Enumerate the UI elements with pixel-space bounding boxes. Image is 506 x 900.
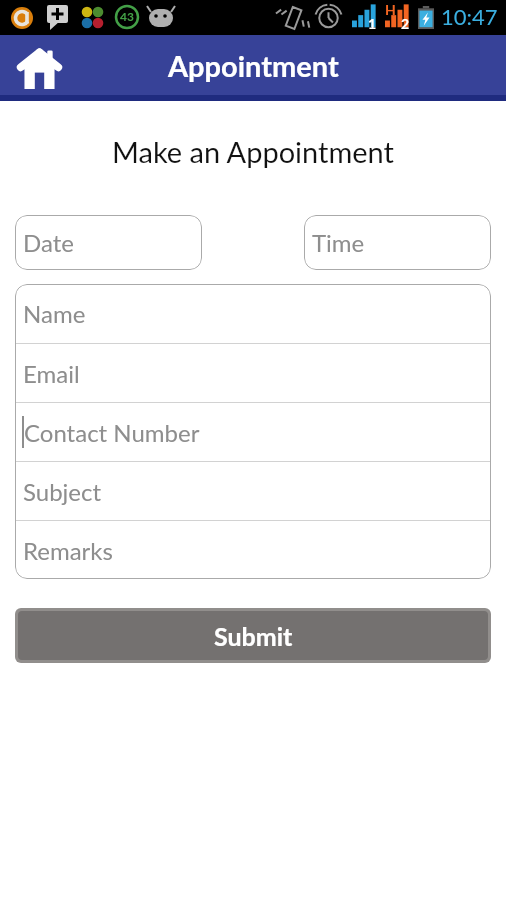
button[interactable]: Submit <box>18 611 488 660</box>
staticText: 10:47 <box>441 3 498 29</box>
button[interactable]: Remarks <box>15 521 491 579</box>
staticText: 2 <box>401 15 410 32</box>
staticText: H <box>385 1 396 18</box>
staticText: Contact Number <box>24 418 200 447</box>
staticText: Remarks <box>23 536 113 565</box>
staticText: Time <box>312 228 365 257</box>
staticText: Make an Appointment <box>0 134 506 169</box>
button[interactable]: Contact Number <box>15 403 491 461</box>
button[interactable]: Email <box>15 344 491 402</box>
button[interactable]: Name <box>15 284 491 343</box>
button[interactable]: Date <box>15 215 202 270</box>
button[interactable]: Time <box>304 215 491 270</box>
staticText: Submit <box>214 621 293 651</box>
staticText: 1 <box>368 15 377 32</box>
staticText: Date <box>23 228 74 257</box>
staticText: Name <box>23 299 86 328</box>
staticText: Subject <box>23 477 102 506</box>
staticText: Appointment <box>168 48 339 83</box>
button[interactable]: Home <box>15 43 63 87</box>
staticText: 43 <box>120 9 134 23</box>
staticText: Email <box>23 359 80 388</box>
button[interactable]: Subject <box>15 462 491 520</box>
